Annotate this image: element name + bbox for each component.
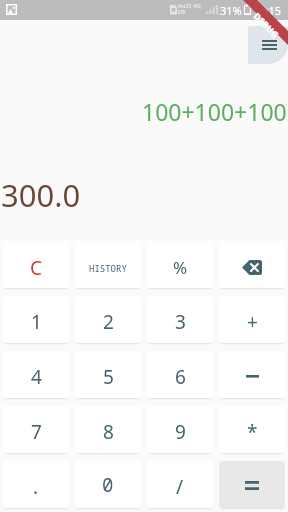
- button[interactable]: C: [3, 241, 69, 288]
- staticText: C: [30, 255, 43, 281]
- other: Delete: [242, 260, 262, 275]
- button[interactable]: Equals: [219, 461, 285, 508]
- staticText: LTE: [178, 9, 186, 15]
- button[interactable]: 2: [75, 296, 141, 343]
- staticText: +: [247, 309, 258, 335]
- button[interactable]: Menu: [248, 26, 288, 64]
- staticText: 2: [103, 309, 114, 335]
- staticText: *: [247, 419, 258, 445]
- staticText: 9: [175, 419, 186, 445]
- button[interactable]: 5: [75, 351, 141, 398]
- button[interactable]: 9: [147, 406, 213, 453]
- other: Minus: [246, 375, 259, 378]
- other: Equals: [245, 481, 259, 490]
- staticText: 8: [103, 419, 114, 445]
- staticText: 12:15: [253, 3, 282, 18]
- button[interactable]: Minus: [219, 351, 285, 398]
- staticText: 300.0: [1, 174, 81, 216]
- staticText: 4G: [193, 2, 201, 10]
- button[interactable]: 6: [147, 351, 213, 398]
- staticText: VoLTE: [178, 3, 192, 9]
- staticText: .: [33, 474, 39, 500]
- button[interactable]: 1: [3, 296, 69, 343]
- staticText: 1: [31, 309, 42, 335]
- staticText: HISTORY: [89, 262, 127, 274]
- staticText: 0: [102, 472, 114, 498]
- staticText: 3: [175, 309, 186, 335]
- button[interactable]: 3: [147, 296, 213, 343]
- button[interactable]: %: [147, 241, 213, 288]
- button[interactable]: 8: [75, 406, 141, 453]
- button[interactable]: HISTORY: [75, 241, 141, 288]
- button[interactable]: 0: [75, 461, 141, 508]
- staticText: DEBUG: [251, 10, 282, 40]
- staticText: 4: [31, 364, 42, 390]
- button[interactable]: +: [219, 296, 285, 343]
- button[interactable]: .: [3, 461, 69, 508]
- button[interactable]: *: [219, 406, 285, 453]
- staticText: 5: [103, 364, 114, 390]
- button[interactable]: 7: [3, 406, 69, 453]
- staticText: 31%: [220, 3, 242, 18]
- button[interactable]: /: [147, 461, 213, 508]
- staticText: %: [173, 256, 188, 279]
- staticText: /: [176, 474, 184, 500]
- staticText: 7: [31, 419, 42, 445]
- button[interactable]: Delete: [219, 241, 285, 288]
- button[interactable]: 4: [3, 351, 69, 398]
- staticText: 6: [175, 364, 186, 390]
- staticText: 100+100+100: [142, 96, 287, 127]
